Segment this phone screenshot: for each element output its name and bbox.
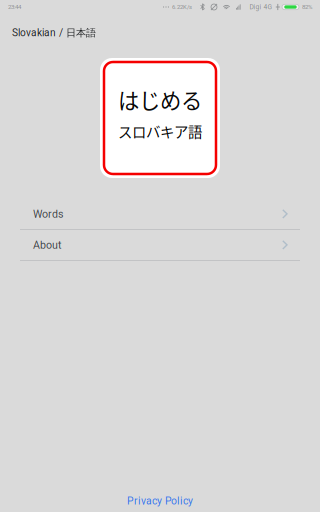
- staticText: スロバキア語: [118, 121, 202, 142]
- staticText: 6.22K/s: [172, 4, 192, 10]
- button[interactable]: Privacy Policy: [113, 492, 207, 510]
- staticText: Words: [33, 208, 64, 220]
- staticText: はじめる: [118, 84, 202, 115]
- staticText: 82%: [302, 3, 312, 11]
- staticText: Slovakian / 日本語: [12, 27, 96, 39]
- button[interactable]: About: [0, 230, 320, 260]
- button[interactable]: はじめる: [100, 58, 220, 178]
- button[interactable]: Words: [0, 199, 320, 229]
- staticText: Digi 4G: [250, 3, 273, 11]
- staticText: About: [33, 239, 61, 251]
- staticText: Privacy Policy: [127, 495, 193, 507]
- staticText: 23:44: [8, 3, 21, 11]
